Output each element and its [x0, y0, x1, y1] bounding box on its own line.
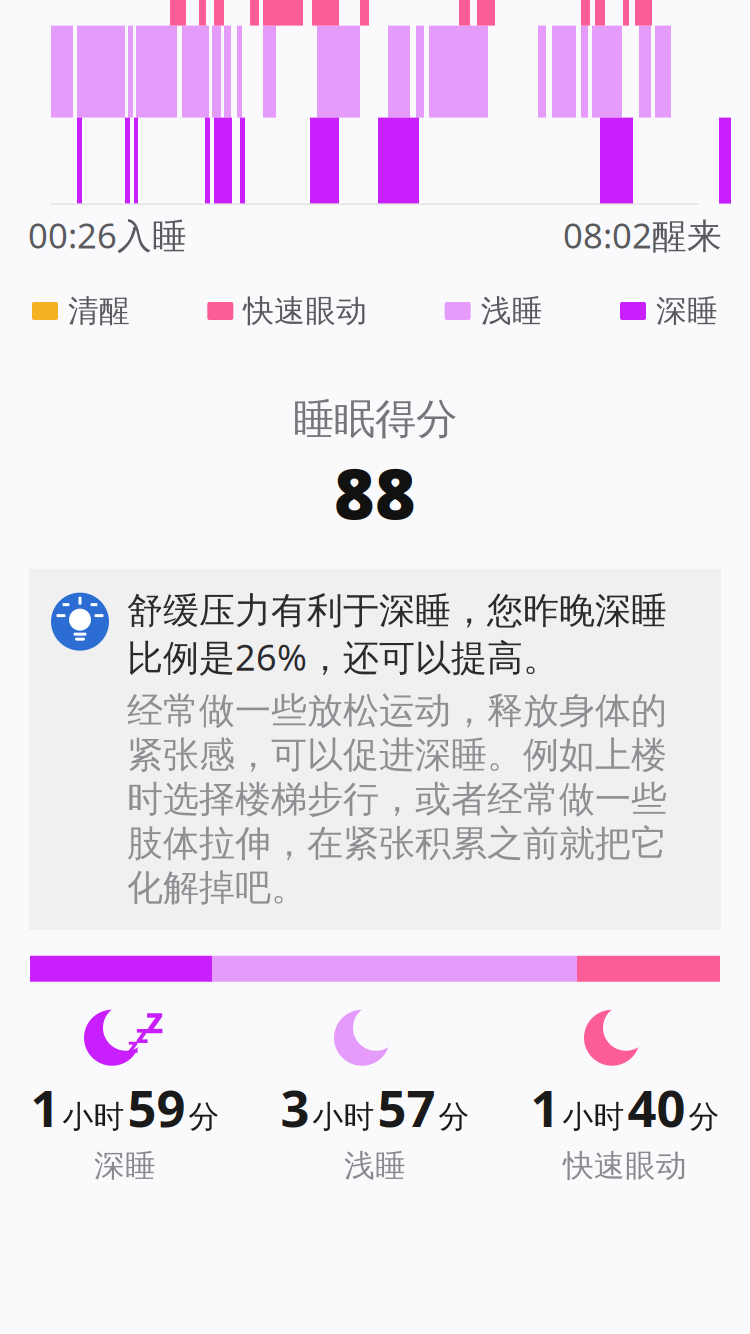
staticText: 3 [280, 1074, 309, 1141]
staticText: Z [146, 1004, 163, 1041]
staticText: 舒缓压力有利于深睡，您昨晚深睡比例是26%，还可以提高。 [127, 589, 667, 681]
staticText: z [128, 1032, 138, 1058]
staticText: 分 [188, 1098, 219, 1136]
staticText: 睡眠得分 [293, 394, 457, 445]
staticText: 深睡 [94, 1147, 156, 1185]
staticText: 深睡 [656, 292, 718, 330]
staticText: 08:02醒来 [563, 212, 722, 258]
staticText: 分 [438, 1098, 469, 1136]
staticText: 分 [688, 1098, 719, 1136]
staticText: 浅睡 [344, 1147, 406, 1185]
staticText: 小时 [562, 1098, 624, 1136]
staticText: 40 [627, 1074, 685, 1141]
staticText: 小时 [62, 1098, 124, 1136]
staticText: 快速眼动 [563, 1147, 687, 1185]
staticText: 1 [30, 1074, 59, 1141]
staticText: 57 [377, 1074, 435, 1141]
staticText: z [136, 1018, 148, 1050]
staticText: 快速眼动 [243, 292, 367, 330]
staticText: 小时 [312, 1098, 374, 1136]
staticText: 清醒 [68, 292, 130, 330]
staticText: 00:26入睡 [28, 212, 187, 258]
staticText: 59 [127, 1074, 185, 1141]
staticText: 经常做一些放松运动，释放身体的紧张感，可以促进深睡。例如上楼时选择楼梯步行，或者… [127, 689, 667, 910]
staticText: 88 [334, 447, 416, 539]
staticText: 1 [530, 1074, 559, 1141]
staticText: 浅睡 [481, 292, 543, 330]
